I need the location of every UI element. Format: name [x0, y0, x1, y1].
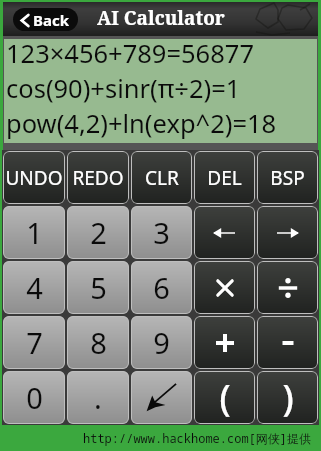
staticText: 4: [26, 268, 43, 307]
button[interactable]: Move cursor right: [257, 206, 318, 259]
button[interactable]: 6: [131, 261, 192, 314]
staticText: pow(4,2)+ln(exp^2)=18: [6, 106, 277, 140]
staticText: 0: [26, 378, 43, 417]
other: Minus: [273, 328, 303, 358]
button[interactable]: Move cursor left: [194, 206, 255, 259]
staticText: (: [219, 373, 231, 422]
button[interactable]: DEL: [194, 151, 255, 204]
other: Multiply: [210, 273, 240, 303]
staticText: 123×456+789=56877: [6, 36, 254, 71]
staticText: Back: [33, 10, 70, 30]
staticText: AI Calculator: [97, 5, 225, 31]
staticText: CLR: [145, 165, 179, 191]
button[interactable]: 5: [67, 261, 129, 314]
staticText: http://www.hackhome.com[网侠]提供: [83, 430, 312, 446]
button[interactable]: Enter: [131, 371, 192, 424]
button[interactable]: BSP: [257, 151, 318, 204]
button[interactable]: Back: [13, 8, 78, 31]
button[interactable]: Plus: [194, 316, 255, 369]
other: Enter: [146, 383, 177, 412]
staticText: .: [94, 378, 102, 417]
staticText: 3: [153, 213, 170, 252]
staticText: 9: [153, 323, 170, 362]
staticText: DEL: [207, 165, 242, 191]
button[interactable]: 4: [3, 261, 65, 314]
button[interactable]: UNDO: [3, 151, 65, 204]
button[interactable]: 2: [67, 206, 129, 259]
staticText: cos(90)+sinr(π÷2)=1: [6, 71, 241, 106]
button[interactable]: Minus: [257, 316, 318, 369]
button[interactable]: Multiply: [194, 261, 255, 314]
staticText: 8: [90, 323, 107, 362]
staticText: 6: [153, 268, 170, 307]
other: Plus: [210, 328, 240, 358]
other: Move cursor left: [213, 227, 236, 239]
button[interactable]: Divide: [257, 261, 318, 314]
staticText: ): [282, 373, 294, 422]
button[interactable]: ): [257, 371, 318, 424]
other: Move cursor right: [276, 227, 299, 239]
button[interactable]: (: [194, 371, 255, 424]
staticText: BSP: [270, 165, 305, 191]
button[interactable]: 0: [3, 371, 65, 424]
button[interactable]: CLR: [131, 151, 192, 204]
staticText: UNDO: [5, 165, 63, 191]
staticText: 5: [90, 268, 107, 307]
button[interactable]: 9: [131, 316, 192, 369]
staticText: 2: [90, 213, 107, 252]
staticText: REDO: [72, 165, 124, 191]
button[interactable]: 7: [3, 316, 65, 369]
button[interactable]: REDO: [67, 151, 129, 204]
staticText: 1: [26, 213, 43, 252]
button[interactable]: 1: [3, 206, 65, 259]
button[interactable]: 8: [67, 316, 129, 369]
staticText: 7: [26, 323, 43, 362]
button[interactable]: .: [67, 371, 129, 424]
other: Divide: [273, 273, 303, 303]
button[interactable]: 3: [131, 206, 192, 259]
